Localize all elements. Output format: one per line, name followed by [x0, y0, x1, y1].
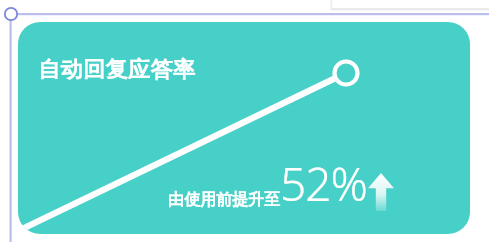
staticText: 自动回复应答率	[38, 56, 196, 84]
staticText: 52%	[280, 152, 367, 215]
staticText: 由使用前提升至	[168, 190, 280, 210]
other: Increase	[368, 173, 394, 211]
button[interactable]: 自动回复应答率	[18, 22, 470, 234]
